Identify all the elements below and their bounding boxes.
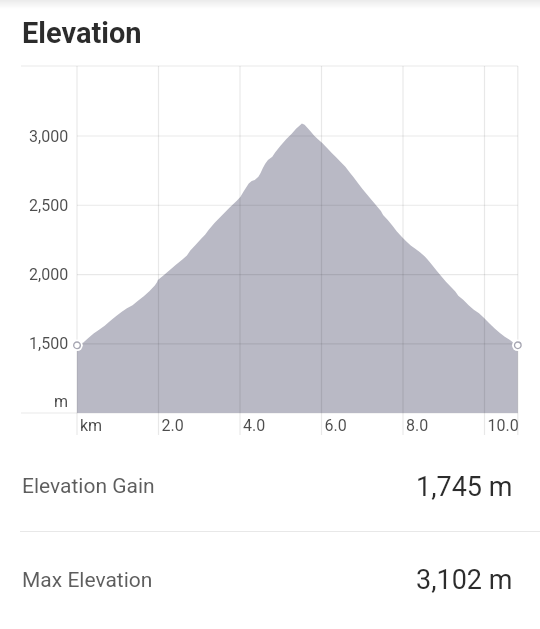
staticText: Max Elevation	[22, 568, 153, 593]
staticText: Elevation	[22, 16, 142, 50]
staticText: 3,102 m	[416, 564, 513, 596]
button[interactable]: Max Elevation	[0, 532, 540, 628]
button[interactable]: Elevation Gain	[0, 442, 540, 531]
other: Elevation profile chart	[0, 58, 540, 442]
staticText: 1,745 m	[416, 471, 513, 503]
staticText: Elevation Gain	[22, 474, 155, 499]
